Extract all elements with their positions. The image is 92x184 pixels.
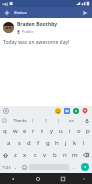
button[interactable]: o [74,125,83,137]
button[interactable]: v [40,149,50,161]
button[interactable]: f [34,137,43,149]
button[interactable]: Stickers [64,108,70,114]
staticText: p [86,127,90,135]
staticText: y [50,127,54,135]
staticText: o [77,127,81,135]
button[interactable]: Voice input [84,118,90,124]
staticText: , [15,164,17,171]
button[interactable]: Emoji keyboard [20,161,29,173]
staticText: u [59,127,63,135]
staticText: ?123 [2,165,11,170]
staticText: . [73,164,75,171]
button[interactable]: Profile photo [3,22,14,33]
button[interactable]: Shift [0,149,11,161]
staticText: w [13,127,18,135]
button[interactable]: y [47,125,56,137]
button[interactable]: r [29,125,38,137]
button[interactable]: on [59,116,84,125]
staticText: Public [22,29,34,34]
staticText: h [55,139,59,147]
button[interactable]: u [56,125,65,137]
button[interactable]: s [14,137,24,149]
staticText: Today was an awesome day! [3,39,70,46]
button[interactable]: Google search [3,108,9,114]
button[interactable]: k [70,137,79,149]
button[interactable]: x [20,149,30,161]
button[interactable]: Clipboard [2,118,7,123]
staticText: b [53,151,57,159]
staticText: k [73,139,77,147]
button[interactable]: i [65,125,74,137]
button[interactable]: b [50,149,60,161]
button[interactable]: Backspace [80,149,92,161]
staticText: x [23,151,27,159]
staticText: j [65,139,67,147]
button[interactable]: d [24,137,34,149]
staticText: q [3,127,7,135]
button[interactable]: I [33,116,58,125]
staticText: t [41,127,44,135]
button[interactable]: l [79,137,88,149]
staticText: v [43,151,47,159]
button[interactable]: Add [0,7,14,18]
staticText: l [83,139,85,147]
button[interactable]: Thanks [7,116,32,125]
button[interactable]: Status [14,7,40,18]
staticText: I [45,118,47,123]
staticText: z [14,151,17,159]
staticText: f [37,139,40,147]
button[interactable]: a [4,137,14,149]
button[interactable]: p [83,125,92,137]
staticText: Thanks [13,118,27,123]
staticText: Braden Boothby [17,21,58,28]
staticText: g [46,139,50,147]
staticText: a [7,139,11,147]
button[interactable]: Enter [78,161,92,173]
button[interactable]: t [38,125,47,137]
staticText: on [69,118,74,123]
staticText: s [18,139,21,147]
staticText: d [27,139,31,147]
button[interactable]: e [20,125,29,137]
button[interactable]: c [30,149,40,161]
button[interactable]: z [11,149,20,161]
button[interactable]: g [43,137,52,149]
button[interactable]: Public [17,29,34,34]
staticText: Status [14,10,27,15]
staticText: e [23,127,27,135]
button[interactable]: , [12,161,20,173]
button[interactable]: Emoji [55,108,61,114]
staticText: i [69,127,71,135]
button[interactable]: Recent apps [50,173,75,184]
button[interactable]: Hide keyboard [75,173,92,184]
button[interactable]: n [60,149,70,161]
button[interactable]: m [70,149,80,161]
staticText: r [32,127,35,135]
staticText: c [34,151,37,159]
button[interactable]: Post [78,7,92,18]
button[interactable]: Media [73,108,79,114]
staticText: m [72,151,78,159]
button[interactable]: w [10,125,20,137]
button[interactable]: . [69,161,78,173]
button[interactable]: ?123 [0,161,12,173]
button[interactable]: q [0,125,10,137]
button[interactable]: Home [25,173,50,184]
button[interactable]: j [61,137,70,149]
button[interactable]: Location [82,108,88,114]
button[interactable]: Back [0,173,25,184]
staticText: n [63,151,67,159]
button[interactable]: h [52,137,61,149]
